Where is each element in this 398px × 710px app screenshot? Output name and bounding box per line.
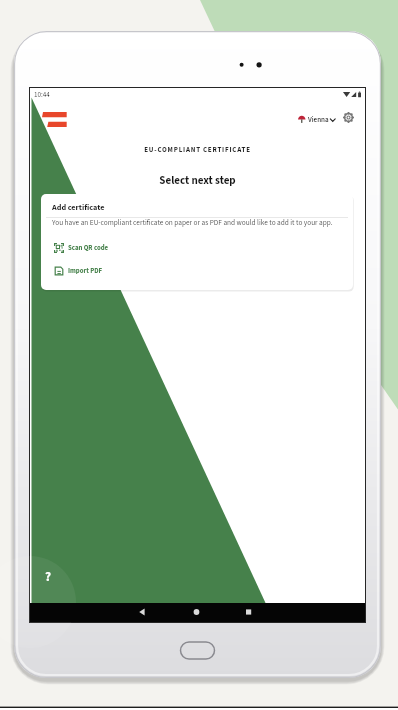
staticText: Add certificate <box>52 202 105 214</box>
button[interactable]: Import PDF <box>41 262 353 279</box>
staticText: Import PDF <box>68 266 103 276</box>
staticText: Vienna <box>308 115 329 125</box>
button[interactable]: Settings <box>340 109 357 126</box>
staticText: Scan QR code <box>68 243 109 253</box>
staticText: Select next step <box>30 173 365 189</box>
button[interactable]: Scan QR code <box>41 239 353 256</box>
staticText: 10:44 <box>34 90 50 100</box>
staticText: EU-COMPLIANT CERTIFICATE <box>30 145 365 155</box>
staticText: ? <box>45 568 52 587</box>
button[interactable]: Vienna <box>295 110 339 130</box>
button[interactable]: Help <box>0 556 76 648</box>
staticText: You have an EU-compliant certificate on … <box>52 218 333 228</box>
